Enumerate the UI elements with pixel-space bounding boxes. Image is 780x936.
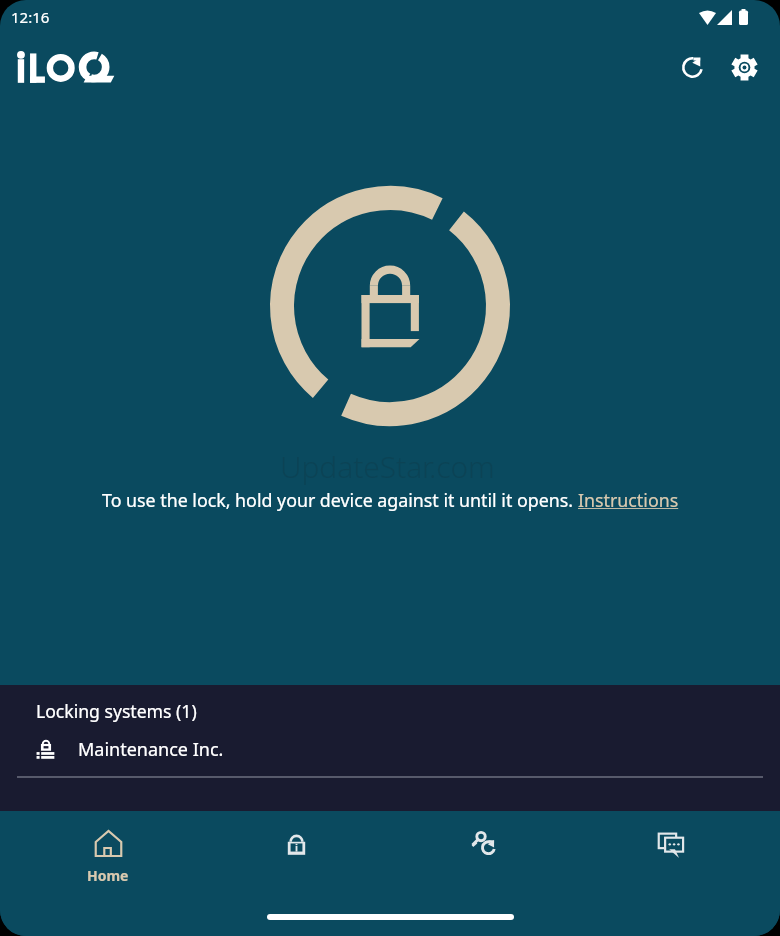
button[interactable]: Key updates — [436, 817, 532, 889]
button[interactable]: Instructions — [578, 488, 679, 512]
staticText: Locking systems (1) — [36, 699, 197, 723]
button[interactable]: Maintenance Inc. — [0, 727, 780, 771]
button[interactable]: Messages — [623, 817, 719, 889]
button[interactable]: Lock info — [248, 817, 344, 889]
staticText: Maintenance Inc. — [78, 737, 224, 762]
button[interactable]: Refresh — [669, 44, 715, 90]
button[interactable]: Home — [60, 817, 156, 889]
button[interactable]: Settings — [721, 44, 767, 90]
staticText: Home — [87, 866, 129, 885]
staticText: 12:16 — [11, 7, 50, 27]
staticText: To use the lock, hold your device agains… — [102, 488, 578, 512]
